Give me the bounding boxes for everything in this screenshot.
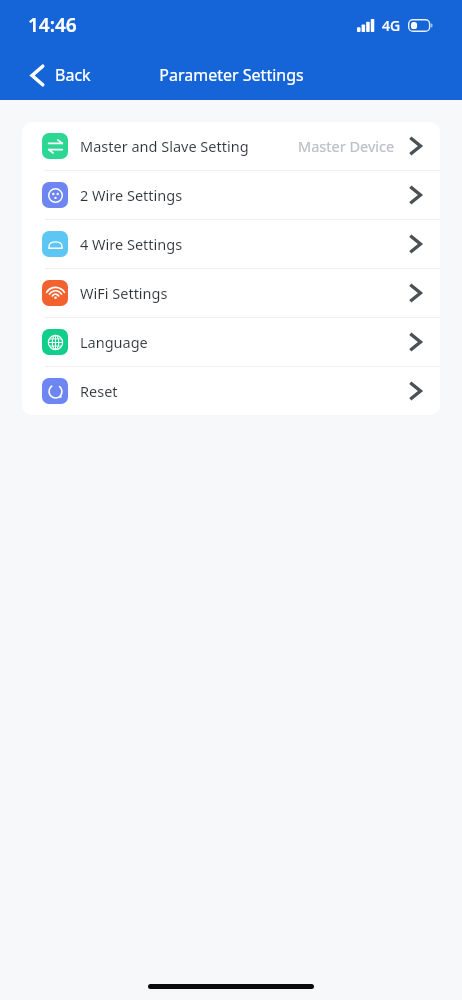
staticText: Master Device [298, 136, 395, 156]
button[interactable]: WiFi Settings [22, 269, 440, 317]
staticText: WiFi Settings [80, 283, 168, 303]
other: Open WiFi Settings [409, 283, 422, 303]
other: Open Master and Slave Setting [409, 136, 422, 156]
staticText: Parameter Settings [159, 64, 304, 86]
staticText: Back [55, 64, 91, 86]
staticText: 4G [382, 16, 401, 35]
button[interactable]: Reset [22, 367, 440, 415]
other: Open Reset [409, 381, 422, 401]
other: Open Language [409, 332, 422, 352]
staticText: 4 Wire Settings [80, 234, 183, 254]
other: Open 4 Wire Settings [409, 234, 422, 254]
button[interactable]: Back [26, 56, 95, 94]
staticText: 2 Wire Settings [80, 185, 183, 205]
button[interactable]: Master and Slave Setting [22, 122, 440, 170]
staticText: Language [80, 332, 148, 352]
staticText: 14:46 [28, 12, 77, 38]
button[interactable]: 4 Wire Settings [22, 220, 440, 268]
button[interactable]: Language [22, 318, 440, 366]
staticText: Reset [80, 381, 118, 401]
other: Open 2 Wire Settings [409, 185, 422, 205]
staticText: Master and Slave Setting [80, 136, 249, 156]
button[interactable]: 2 Wire Settings [22, 171, 440, 219]
